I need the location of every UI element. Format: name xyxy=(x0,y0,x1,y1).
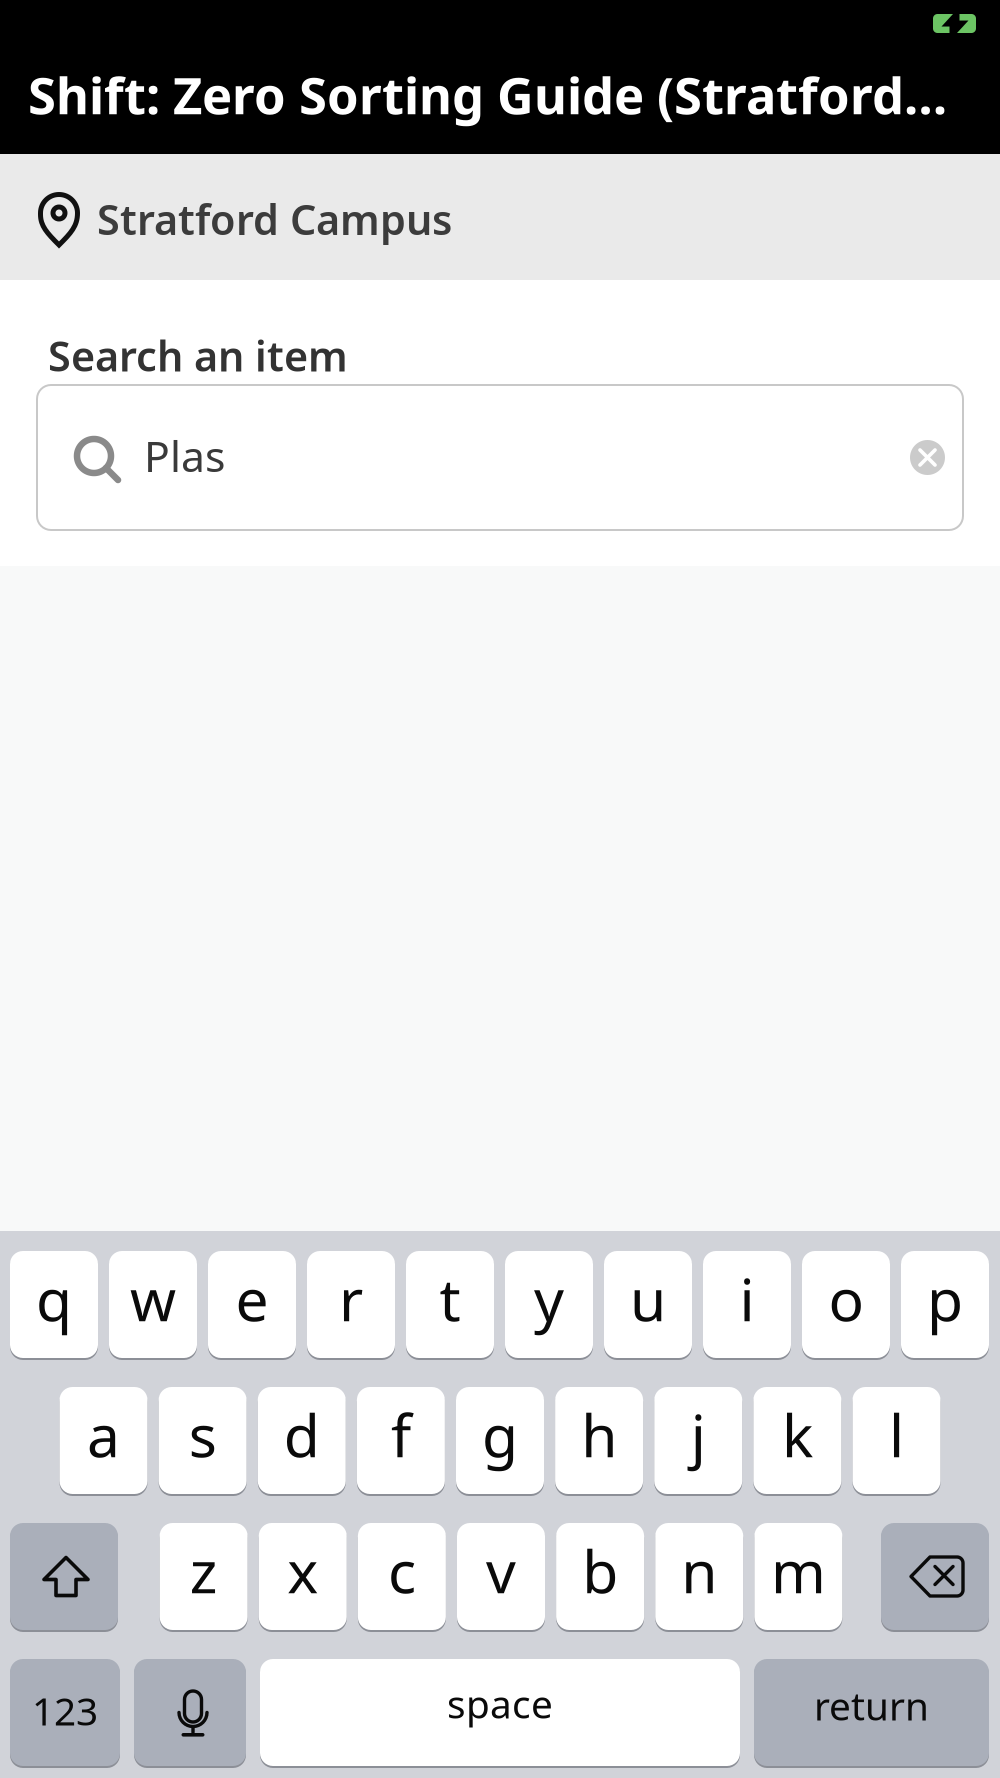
staticText: s xyxy=(189,1395,217,1473)
staticText: m xyxy=(771,1531,826,1609)
button[interactable]: Stratford Campus xyxy=(0,154,1000,280)
staticText: f xyxy=(391,1395,411,1473)
staticText: l xyxy=(889,1395,904,1473)
button[interactable]: j xyxy=(654,1387,742,1494)
button[interactable]: l xyxy=(852,1387,940,1494)
staticText: a xyxy=(87,1395,120,1473)
staticText: q xyxy=(36,1259,72,1337)
button[interactable]: Plas xyxy=(37,385,963,530)
staticText: Shift: Zero Sorting Guide (Stratford… xyxy=(28,61,947,128)
staticText: k xyxy=(782,1395,813,1473)
button[interactable]: space xyxy=(260,1659,740,1766)
staticText: v xyxy=(486,1531,516,1609)
button[interactable]: x xyxy=(259,1523,347,1630)
button[interactable]: r xyxy=(307,1251,395,1358)
staticText: Search an item xyxy=(48,328,348,383)
button[interactable]: d xyxy=(258,1387,346,1494)
staticText: e xyxy=(235,1259,268,1337)
button[interactable]: f xyxy=(357,1387,445,1494)
button[interactable]: Delete xyxy=(881,1523,989,1630)
staticText: Stratford Campus xyxy=(97,192,452,246)
staticText: p xyxy=(927,1259,963,1337)
staticText: g xyxy=(482,1395,518,1473)
staticText: u xyxy=(630,1259,666,1337)
button[interactable]: Shift xyxy=(10,1523,118,1630)
button[interactable]: k xyxy=(753,1387,841,1494)
button[interactable]: h xyxy=(555,1387,643,1494)
staticText: o xyxy=(828,1259,863,1337)
button[interactable]: n xyxy=(655,1523,743,1630)
staticText: w xyxy=(130,1259,176,1337)
button[interactable]: g xyxy=(456,1387,544,1494)
button[interactable]: s xyxy=(159,1387,247,1494)
button[interactable]: Dictate xyxy=(134,1659,246,1766)
button[interactable]: z xyxy=(160,1523,248,1630)
button[interactable]: i xyxy=(703,1251,791,1358)
staticText: i xyxy=(739,1259,754,1337)
button[interactable]: o xyxy=(802,1251,890,1358)
staticText: x xyxy=(287,1531,318,1609)
button[interactable]: c xyxy=(358,1523,446,1630)
staticText: space xyxy=(447,1678,553,1729)
staticText: h xyxy=(581,1395,617,1473)
staticText: y xyxy=(534,1259,564,1337)
staticText: z xyxy=(190,1531,218,1609)
staticText: Plas xyxy=(144,427,225,484)
button[interactable]: t xyxy=(406,1251,494,1358)
button[interactable]: v xyxy=(457,1523,545,1630)
staticText: r xyxy=(339,1259,363,1337)
staticText: j xyxy=(691,1395,706,1473)
staticText: 123 xyxy=(32,1685,98,1736)
staticText: return xyxy=(814,1680,929,1731)
staticText: t xyxy=(439,1259,460,1337)
button[interactable]: u xyxy=(604,1251,692,1358)
staticText: b xyxy=(582,1531,618,1609)
staticText: n xyxy=(681,1531,717,1609)
button[interactable]: 123 xyxy=(10,1659,120,1766)
button[interactable]: Clear text xyxy=(900,430,955,485)
button[interactable]: w xyxy=(109,1251,197,1358)
staticText: c xyxy=(388,1531,416,1609)
button[interactable]: return xyxy=(754,1659,989,1766)
button[interactable]: b xyxy=(556,1523,644,1630)
button[interactable]: a xyxy=(59,1387,147,1494)
button[interactable]: e xyxy=(208,1251,296,1358)
button[interactable]: p xyxy=(901,1251,989,1358)
staticText: d xyxy=(284,1395,320,1473)
button[interactable]: m xyxy=(754,1523,842,1630)
button[interactable]: q xyxy=(10,1251,98,1358)
button[interactable]: y xyxy=(505,1251,593,1358)
